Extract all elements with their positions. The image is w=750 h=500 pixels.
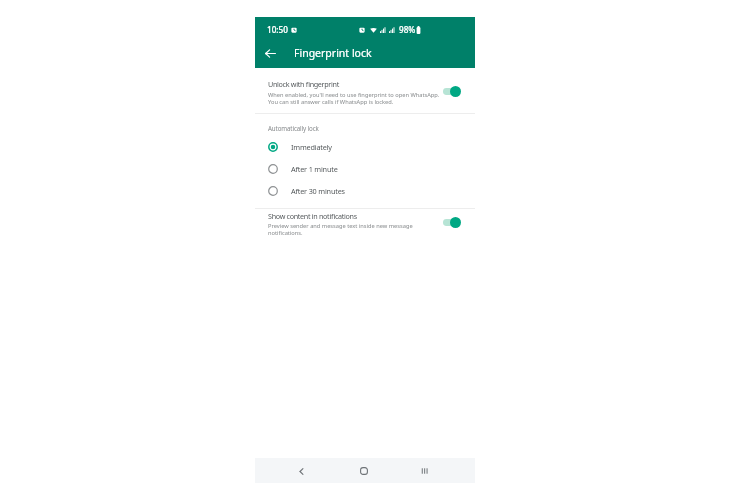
staticText: Preview sender and message text inside n… — [268, 222, 413, 237]
button[interactable]: Unlock with fingerprint — [255, 68, 475, 106]
staticText: 10:50 — [267, 24, 288, 35]
button[interactable]: Toggle — [443, 86, 461, 97]
button[interactable]: Navigate up — [260, 43, 281, 64]
staticText: After 30 minutes — [291, 186, 345, 196]
button[interactable]: Back — [291, 461, 311, 481]
staticText: Unlock with fingerprint — [268, 79, 339, 89]
button[interactable]: Toggle — [443, 217, 461, 228]
staticText: 98% — [399, 24, 416, 35]
staticText: When enabled, you'll need to use fingerp… — [268, 91, 440, 106]
staticText: Automatically lock — [268, 124, 319, 132]
button[interactable]: After 1 minute — [255, 158, 475, 180]
button[interactable]: After 30 minutes — [255, 180, 475, 202]
staticText: After 1 minute — [291, 164, 338, 174]
staticText: Fingerprint lock — [294, 46, 372, 60]
staticText: Immediately — [291, 142, 332, 152]
button[interactable]: Immediately — [255, 136, 475, 158]
button[interactable]: Show content in notifications — [255, 209, 475, 243]
button[interactable]: Recent apps — [414, 461, 434, 481]
staticText: Show content in notifications — [268, 211, 357, 221]
button[interactable]: Home — [354, 461, 374, 481]
